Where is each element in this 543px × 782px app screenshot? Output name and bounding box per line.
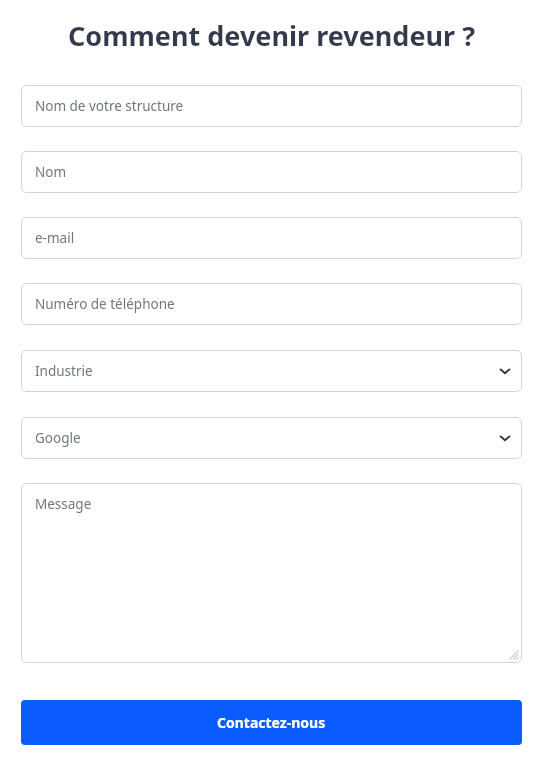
staticText: Google: [35, 429, 81, 447]
staticText: Nom: [35, 163, 67, 181]
button[interactable]: Google: [21, 417, 522, 459]
staticText: Industrie: [35, 362, 93, 380]
staticText: Contactez-nous: [217, 713, 326, 732]
staticText: e-mail: [35, 229, 75, 247]
button[interactable]: Nom: [21, 151, 522, 193]
staticText: Comment devenir revendeur ?: [21, 17, 522, 54]
button[interactable]: Contactez-nous: [21, 700, 522, 745]
button[interactable]: e-mail: [21, 217, 522, 259]
staticText: Message: [35, 495, 92, 513]
staticText: Numéro de téléphone: [35, 295, 175, 313]
button[interactable]: Industrie: [21, 350, 522, 392]
staticText: Nom de votre structure: [35, 97, 184, 115]
button[interactable]: Nom de votre structure: [21, 85, 522, 127]
button[interactable]: Message: [21, 483, 522, 663]
button[interactable]: Numéro de téléphone: [21, 283, 522, 325]
